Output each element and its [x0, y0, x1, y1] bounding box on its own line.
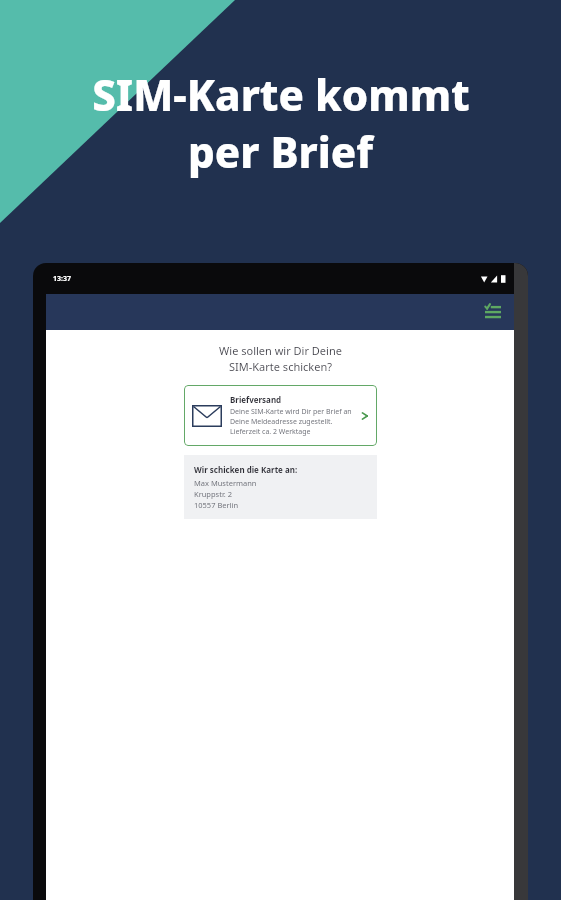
- staticText: Max Mustermann Kruppstr. 2 10557 Berlin: [194, 478, 257, 510]
- button[interactable]: Checklist: [481, 300, 505, 324]
- staticText: Deine SIM-Karte wird Dir per Brief an De…: [230, 407, 357, 437]
- staticText: Briefversand: [230, 394, 282, 405]
- staticText: Wir schicken die Karte an:: [194, 464, 298, 475]
- staticText: per Brief: [188, 123, 373, 180]
- staticText: SIM-Karte kommt: [92, 66, 470, 123]
- staticText: 13:37: [53, 274, 71, 284]
- button[interactable]: Briefversand: [184, 385, 377, 446]
- staticText: Wie sollen wir Dir Deine SIM-Karte schic…: [219, 343, 342, 374]
